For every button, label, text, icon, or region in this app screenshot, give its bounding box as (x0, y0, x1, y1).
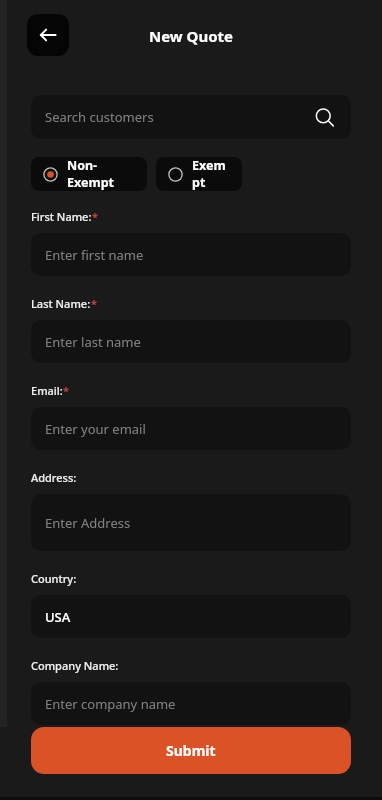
staticText: Search customers (45, 108, 154, 126)
staticText: * (63, 383, 69, 398)
staticText: First Name: (31, 209, 92, 224)
button[interactable]: Submit (31, 727, 351, 774)
staticText: Enter last name (45, 333, 141, 351)
button[interactable]: Non-Exempt (31, 157, 147, 191)
staticText: * (91, 296, 97, 311)
button[interactable]: Enter last name (31, 320, 351, 363)
button[interactable]: Enter your email (31, 407, 351, 450)
button[interactable]: Enter first name (31, 233, 351, 276)
staticText: Submit (166, 741, 216, 760)
staticText: Address: (31, 470, 77, 485)
button[interactable]: Enter company name (31, 682, 351, 725)
staticText: Country: (31, 571, 77, 586)
staticText: Enter company name (45, 695, 176, 713)
staticText: Non-Exempt (67, 157, 135, 191)
staticText: Exempt (192, 157, 230, 191)
staticText: Last Name: (31, 296, 91, 311)
button[interactable]: Enter Address (31, 494, 351, 551)
button[interactable]: USA (31, 595, 351, 638)
staticText: New Quote (0, 26, 382, 46)
staticText: Company Name: (31, 658, 119, 673)
button[interactable]: Back (27, 14, 69, 56)
button[interactable]: Exempt (156, 157, 242, 191)
staticText: * (92, 209, 98, 224)
staticText: Email: (31, 383, 63, 398)
staticText: Enter your email (45, 420, 146, 438)
staticText: Enter Address (45, 514, 131, 532)
button[interactable]: Search customers (31, 95, 351, 139)
staticText: USA (45, 608, 71, 626)
staticText: Enter first name (45, 246, 144, 264)
button[interactable]: Search (311, 104, 337, 130)
